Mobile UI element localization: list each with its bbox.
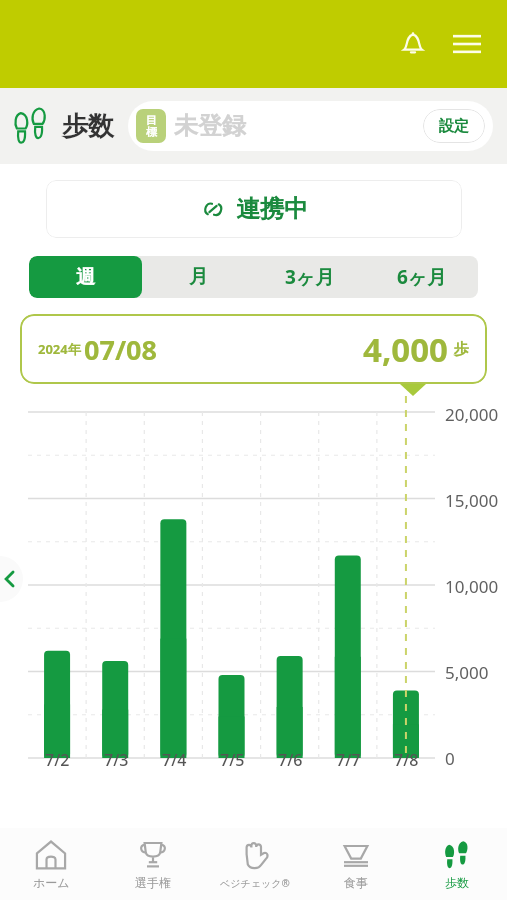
staticText: ホーム bbox=[33, 875, 70, 890]
staticText: 6ヶ月 bbox=[397, 264, 447, 290]
button[interactable]: 2024年 bbox=[38, 314, 469, 384]
staticText: 7/8 bbox=[394, 749, 419, 771]
button[interactable]: 6ヶ月 bbox=[366, 256, 478, 298]
button[interactable]: 目 標 bbox=[128, 101, 493, 151]
staticText: 未登録 bbox=[174, 111, 246, 141]
button[interactable]: 連携中 bbox=[46, 180, 462, 238]
button[interactable]: ベジチェック® bbox=[204, 828, 305, 900]
staticText: 7/3 bbox=[104, 749, 129, 771]
staticText: 設定 bbox=[439, 117, 469, 136]
button[interactable]: Notifications bbox=[389, 20, 437, 68]
button[interactable]: 食事 bbox=[305, 828, 406, 900]
staticText: 週 bbox=[76, 265, 95, 289]
button[interactable]: ホーム bbox=[0, 828, 102, 900]
staticText: 7/6 bbox=[278, 749, 303, 771]
staticText: ベジチェック® bbox=[220, 876, 290, 890]
staticText: 0 bbox=[445, 747, 455, 770]
staticText: 5,000 bbox=[445, 661, 489, 684]
button[interactable]: 選手権 bbox=[102, 828, 204, 900]
button[interactable]: 月 bbox=[142, 256, 254, 298]
staticText: 07/08 bbox=[84, 331, 157, 368]
staticText: 7/4 bbox=[162, 749, 187, 771]
staticText: 月 bbox=[189, 265, 208, 289]
staticText: 20,000 bbox=[445, 403, 499, 426]
staticText: 7/2 bbox=[45, 749, 70, 771]
staticText: 4,000 bbox=[363, 327, 448, 372]
staticText: 10,000 bbox=[445, 575, 499, 598]
button[interactable]: Menu bbox=[443, 20, 491, 68]
staticText: 食事 bbox=[344, 875, 368, 890]
button[interactable]: 3ヶ月 bbox=[254, 256, 366, 298]
staticText: 2024年 bbox=[38, 340, 81, 358]
staticText: 連携中 bbox=[236, 194, 308, 224]
staticText: 7/7 bbox=[336, 749, 361, 771]
staticText: 15,000 bbox=[445, 489, 499, 512]
button[interactable]: 週 bbox=[29, 256, 142, 298]
button[interactable]: 設定 bbox=[423, 109, 485, 143]
staticText: 3ヶ月 bbox=[285, 264, 335, 290]
staticText: 目 標 bbox=[146, 113, 157, 139]
staticText: 選手権 bbox=[135, 875, 171, 890]
staticText: 7/5 bbox=[220, 749, 245, 771]
button[interactable]: Previous week bbox=[0, 556, 23, 602]
staticText: 歩数 bbox=[62, 110, 114, 143]
staticText: 歩数 bbox=[445, 875, 469, 890]
button[interactable]: 歩数 bbox=[406, 828, 507, 900]
staticText: 歩 bbox=[454, 340, 469, 359]
